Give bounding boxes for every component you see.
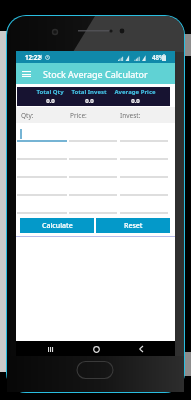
button[interactable] [120, 161, 168, 179]
button[interactable]: Back [135, 343, 147, 355]
button[interactable] [120, 125, 168, 143]
staticText: Calculate [42, 221, 73, 231]
button[interactable]: Open navigation menu [18, 66, 34, 82]
button[interactable] [17, 143, 67, 161]
staticText: 0.0 [85, 97, 94, 105]
staticText: Price: [70, 111, 87, 120]
button[interactable]: Calculate [20, 218, 94, 233]
staticText: 48% [152, 53, 165, 61]
button[interactable] [17, 125, 67, 143]
staticText: Average Price [114, 88, 156, 96]
button[interactable] [69, 161, 117, 179]
staticText: Total Invest [71, 88, 107, 96]
staticText: 0.0 [131, 97, 140, 105]
button[interactable] [69, 143, 117, 161]
button[interactable]: Home [90, 343, 102, 355]
button[interactable] [120, 143, 168, 161]
staticText: Total Qty [36, 88, 64, 96]
staticText: Reset [124, 221, 143, 231]
staticText: 12:22 [25, 53, 41, 61]
button[interactable] [17, 197, 67, 215]
button[interactable] [69, 197, 117, 215]
button[interactable]: Recent apps [44, 343, 56, 355]
button[interactable] [17, 179, 67, 197]
staticText: 0.0 [46, 97, 55, 105]
button[interactable] [17, 161, 67, 179]
button[interactable]: Reset [96, 218, 170, 233]
button[interactable] [120, 197, 168, 215]
button[interactable] [69, 179, 117, 197]
staticText: Qty: [21, 111, 34, 120]
button[interactable] [69, 125, 117, 143]
button[interactable] [120, 179, 168, 197]
staticText: Invest: [120, 111, 141, 120]
staticText: Stock Average Calculator [43, 68, 148, 80]
